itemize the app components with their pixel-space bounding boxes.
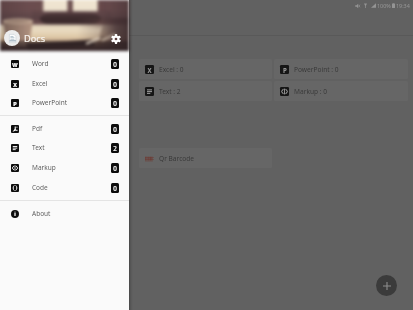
- button[interactable]: Qr Barcode: [139, 148, 272, 168]
- staticText: Text: [32, 143, 45, 152]
- button[interactable]: Settings: [109, 32, 122, 45]
- staticText: Excel: [32, 79, 48, 88]
- staticText: 0: [113, 80, 117, 88]
- button[interactable]: Text : 2: [139, 81, 272, 101]
- button[interactable]: X: [139, 59, 272, 79]
- staticText: 19:34: [396, 2, 410, 9]
- staticText: P: [283, 66, 287, 74]
- button[interactable]: P: [274, 59, 408, 79]
- staticText: Qr Barcode: [159, 154, 195, 163]
- staticText: 0: [113, 125, 117, 133]
- staticText: Markup: [32, 163, 56, 172]
- staticText: 100%: [377, 2, 391, 9]
- staticText: Word: [32, 59, 49, 68]
- button[interactable]: X: [0, 74, 129, 93]
- staticText: PowerPoint : 0: [294, 65, 339, 74]
- staticText: 0: [113, 184, 117, 192]
- staticText: Markup : 0: [294, 87, 328, 96]
- button[interactable]: P: [0, 93, 129, 112]
- staticText: Pdf: [32, 124, 43, 133]
- button[interactable]: Text: [0, 138, 129, 157]
- staticText: About: [32, 209, 51, 218]
- staticText: Code: [32, 183, 48, 192]
- staticText: P: [13, 100, 17, 107]
- staticText: PowerPoint: [32, 98, 68, 107]
- staticText: 2: [113, 144, 117, 152]
- button[interactable]: Pdf: [0, 119, 129, 138]
- staticText: X: [13, 81, 17, 88]
- staticText: 0: [113, 164, 117, 172]
- button[interactable]: About: [0, 204, 129, 223]
- staticText: W: [12, 61, 18, 68]
- staticText: Excel : 0: [159, 65, 184, 74]
- staticText: Text : 2: [159, 87, 181, 96]
- staticText: 0: [113, 99, 117, 107]
- button[interactable]: W: [0, 54, 129, 73]
- staticText: Docs: [24, 32, 46, 45]
- staticText: 0: [113, 60, 117, 68]
- button[interactable]: Add: [376, 275, 397, 296]
- button[interactable]: Markup : 0: [274, 81, 408, 101]
- staticText: X: [147, 66, 152, 74]
- button[interactable]: Code: [0, 178, 129, 197]
- button[interactable]: Markup: [0, 158, 129, 177]
